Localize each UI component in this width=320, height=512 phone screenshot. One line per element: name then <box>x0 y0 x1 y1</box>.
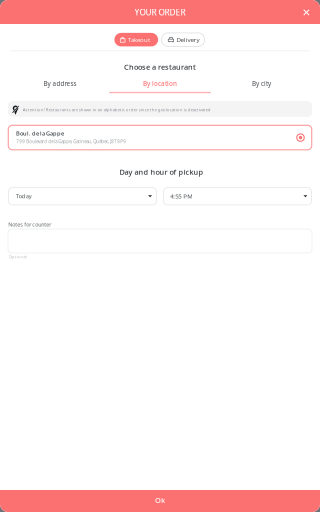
staticText: Today <box>16 192 32 200</box>
staticText: 799 Boulevard de la Gappe, Gatineau, Qué… <box>16 139 126 145</box>
button[interactable]: By location <box>110 79 210 88</box>
staticText: By address <box>43 79 76 88</box>
staticText: Boul. de la Gappe <box>16 129 64 137</box>
staticText: By location <box>143 79 177 88</box>
button[interactable]: By city <box>211 79 311 88</box>
button[interactable]: Today <box>8 188 156 205</box>
staticText: By city <box>252 79 271 88</box>
button[interactable]: Boul. de la Gappe <box>8 125 312 150</box>
staticText: Choose a restaurant <box>124 62 196 72</box>
button[interactable]: Close <box>299 5 313 19</box>
button[interactable]: Delivery <box>161 33 205 46</box>
button[interactable]: Ok <box>0 490 320 512</box>
staticText: Day and hour of pickup <box>120 167 204 177</box>
staticText: Ok <box>155 495 165 505</box>
staticText: YOUR ORDER <box>134 7 185 18</box>
button[interactable]: By address <box>10 79 110 88</box>
staticText: 4:55 PM <box>170 192 193 200</box>
staticText: Notes for counter <box>8 221 51 228</box>
button[interactable]: Takeout <box>114 33 158 46</box>
button[interactable]: 4:55 PM <box>163 188 311 205</box>
staticText: Takeout <box>128 35 150 44</box>
staticText: Attention! Restaurants are shown in an a… <box>23 107 211 112</box>
staticText: Optional <box>9 254 27 260</box>
staticText: Delivery <box>176 35 199 44</box>
